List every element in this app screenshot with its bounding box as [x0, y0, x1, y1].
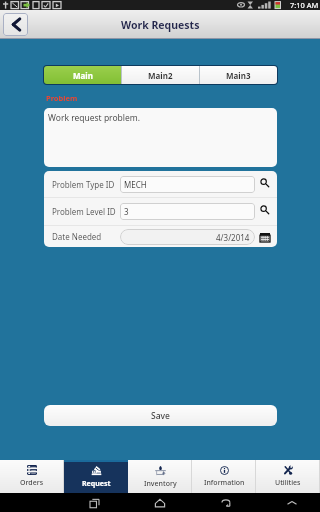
button[interactable]: Problem Level ID	[44, 198, 277, 225]
button[interactable]: Orders	[0, 460, 64, 493]
button[interactable]: Back	[217, 494, 235, 512]
button[interactable]: Main3	[200, 66, 277, 84]
button[interactable]: Recents	[85, 494, 103, 512]
staticText: Main2	[148, 70, 173, 81]
button[interactable]: Back	[3, 13, 28, 36]
staticText: 7:10 AM	[290, 0, 319, 10]
button[interactable]: Search Problem Level ID	[255, 198, 277, 225]
staticText: Work request problem.	[48, 112, 141, 124]
staticText: Date Needed	[52, 231, 120, 242]
button[interactable]: Home	[151, 494, 169, 512]
button[interactable]: Pick date	[255, 226, 277, 247]
button[interactable]: Inventory	[128, 460, 192, 493]
button[interactable]: Main	[44, 66, 121, 84]
staticText: Main3	[226, 70, 251, 81]
button[interactable]: Main2	[122, 66, 199, 84]
staticText: Problem Type ID	[52, 179, 120, 190]
button[interactable]: Request	[64, 460, 128, 493]
staticText: Inventory	[144, 479, 177, 489]
staticText: MECH	[124, 179, 147, 190]
button[interactable]: Problem Type ID	[44, 171, 277, 197]
staticText: Problem Level ID	[52, 206, 120, 217]
button[interactable]: Save	[44, 405, 277, 426]
button[interactable]: Menu	[284, 495, 300, 511]
staticText: Save	[151, 410, 170, 422]
button[interactable]: Utilities	[256, 460, 320, 493]
staticText: 3	[124, 206, 129, 217]
button[interactable]: Work request problem.	[44, 108, 277, 167]
button[interactable]: Search Problem Type ID	[255, 171, 277, 197]
staticText: Problem	[46, 93, 78, 103]
staticText: 4/3/2014	[216, 232, 250, 243]
button[interactable]: Date Needed	[44, 226, 277, 247]
staticText: Orders	[20, 478, 44, 488]
button[interactable]: Information	[192, 460, 256, 493]
staticText: Information	[204, 478, 245, 488]
staticText: Work Requests	[121, 18, 200, 32]
staticText: Utilities	[275, 478, 301, 488]
staticText: Main	[73, 70, 93, 81]
staticText: Request	[82, 479, 111, 489]
